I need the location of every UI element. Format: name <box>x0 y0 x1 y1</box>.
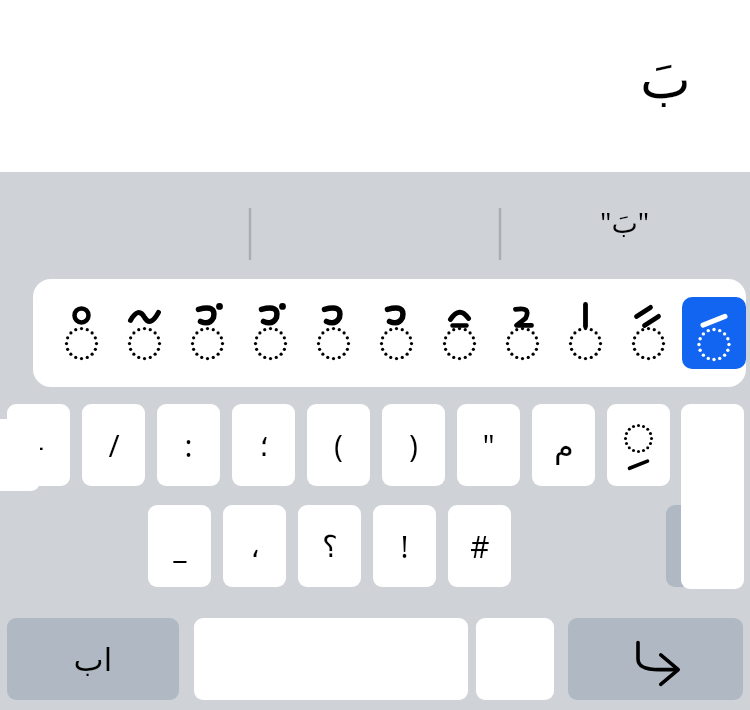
button[interactable]: م <box>532 404 595 486</box>
staticText: # <box>470 526 490 567</box>
button[interactable]: # <box>448 505 511 587</box>
button[interactable] <box>554 289 617 377</box>
button[interactable]: ؟ <box>298 505 361 587</box>
staticText: بَ <box>640 48 691 111</box>
staticText: _ <box>173 526 187 567</box>
staticText: - <box>34 425 44 466</box>
button[interactable]: ! <box>373 505 436 587</box>
staticText: " <box>482 425 495 466</box>
staticText: اب <box>73 641 113 678</box>
button[interactable]: Enter <box>568 618 743 700</box>
button[interactable] <box>176 289 239 377</box>
staticText: ! <box>400 526 409 567</box>
staticText: ) <box>409 425 418 466</box>
button[interactable] <box>681 404 744 589</box>
staticText: : <box>184 425 193 466</box>
button[interactable]: اب <box>7 618 179 700</box>
staticText: م <box>554 427 574 464</box>
button[interactable] <box>50 289 113 377</box>
staticText: ؟ <box>322 529 338 564</box>
staticText: ؛ <box>259 428 269 463</box>
button[interactable]: Kasra <box>607 404 670 486</box>
button[interactable]: _ <box>148 505 211 587</box>
button[interactable]: " <box>457 404 520 486</box>
button[interactable]: Backspace <box>666 505 744 587</box>
button[interactable] <box>239 289 302 377</box>
staticText: ، <box>250 529 260 564</box>
button[interactable]: ؛ <box>232 404 295 486</box>
staticText: ( <box>334 425 343 466</box>
staticText: "بَ" <box>600 203 650 241</box>
button[interactable]: ( <box>307 404 370 486</box>
button[interactable] <box>302 289 365 377</box>
button[interactable]: "بَ" <box>500 172 750 272</box>
button[interactable]: ، <box>223 505 286 587</box>
button[interactable]: - <box>7 404 70 486</box>
button[interactable]: : <box>157 404 220 486</box>
button[interactable] <box>365 289 428 377</box>
button[interactable] <box>476 618 554 700</box>
button[interactable] <box>428 289 491 377</box>
button[interactable] <box>113 289 176 377</box>
button[interactable]: ) <box>382 404 445 486</box>
button[interactable] <box>491 289 554 377</box>
staticText: / <box>108 425 120 466</box>
button[interactable]: / <box>82 404 145 486</box>
button[interactable] <box>617 289 680 377</box>
button[interactable] <box>682 297 746 369</box>
